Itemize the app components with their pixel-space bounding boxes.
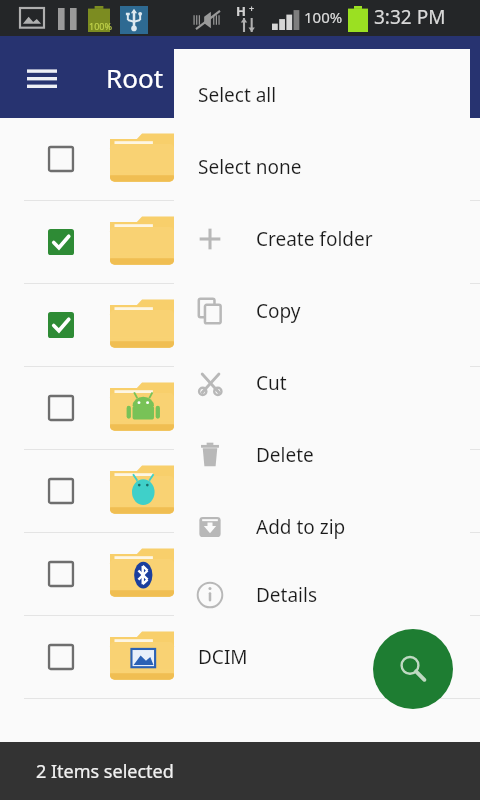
staticText: Select none [198,154,302,180]
staticText: Copy [256,298,301,324]
button[interactable] [0,367,480,449]
staticText: Delete [256,442,314,468]
button[interactable]: Add to zip [174,491,470,563]
button[interactable]: Menu [18,53,66,101]
staticText: + [249,2,255,14]
staticText: 3:32 PM [374,4,446,30]
staticText: Cut [256,370,287,396]
button[interactable]: Select all [174,59,470,131]
staticText: Bluetooth [198,561,287,587]
button[interactable] [0,284,480,366]
staticText: 2 Items selected [36,759,174,784]
button[interactable] [0,450,480,532]
staticText: 100% [304,7,343,27]
staticText: Add to zip [256,514,346,540]
button[interactable]: Delete [174,419,470,491]
staticText: Details [256,582,318,608]
staticText: Create folder [256,226,373,252]
button[interactable] [0,201,480,283]
button[interactable]: Select none [174,131,470,203]
button[interactable]: Search [373,629,453,709]
staticText: H [236,2,246,20]
button[interactable]: Details [174,563,470,626]
staticText: Root [106,60,164,95]
button[interactable] [0,118,480,200]
button[interactable]: Create folder [174,203,470,275]
staticText: DCIM [198,644,248,670]
staticText: Select all [198,82,277,108]
button[interactable]: Cut [174,347,470,419]
staticText: 100% [89,20,112,32]
button[interactable]: DCIM [0,616,480,698]
button[interactable]: Bluetooth [0,533,480,615]
button[interactable]: Copy [174,275,470,347]
